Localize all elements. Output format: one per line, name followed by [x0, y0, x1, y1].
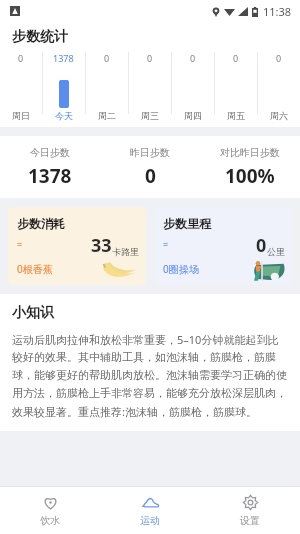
staticText: 0	[18, 52, 24, 64]
staticText: 1378	[53, 52, 74, 64]
staticText: 0	[147, 52, 153, 64]
button[interactable]: 运动	[100, 487, 200, 534]
staticText: 0	[145, 163, 156, 189]
button[interactable]: 设置	[200, 487, 300, 534]
other: 运动	[142, 494, 159, 511]
staticText: 公里	[267, 246, 285, 257]
staticText: =	[163, 238, 169, 250]
staticText: 运动	[140, 514, 160, 527]
staticText: 今天	[55, 110, 73, 121]
staticText: 周二	[98, 110, 116, 121]
staticText: =	[17, 238, 23, 250]
staticText: 33	[91, 233, 112, 258]
staticText: 0	[256, 233, 267, 258]
staticText: 小知识	[12, 304, 54, 322]
staticText: 步数消耗	[17, 216, 65, 231]
staticText: 100%	[225, 163, 275, 189]
staticText: 运动后肌肉拉伸和放松非常重要，5–10分钟就能起到比较好的效果。其中辅助工具，如…	[12, 332, 288, 419]
staticText: 饮水	[40, 514, 60, 527]
staticText: 卡路里	[112, 246, 139, 257]
staticText: 今日步数	[30, 146, 70, 159]
staticText: 周四	[184, 110, 202, 121]
staticText: 0根香蕉	[17, 262, 53, 276]
staticText: 周五	[227, 110, 245, 121]
staticText: 对比昨日步数	[220, 146, 280, 159]
button[interactable]: 昨日步数	[100, 136, 200, 198]
button[interactable]: 步数消耗	[8, 207, 146, 285]
button[interactable]: 饮水	[0, 487, 100, 534]
staticText: 0圈操场	[163, 262, 199, 276]
staticText: 周六	[270, 110, 288, 121]
staticText: 昨日步数	[130, 146, 170, 159]
other: 饮水	[42, 494, 59, 511]
button[interactable]: 步数里程	[154, 207, 292, 285]
staticText: 周三	[141, 110, 159, 121]
button[interactable]: 对比昨日步数	[200, 136, 300, 198]
staticText: 0	[276, 52, 282, 64]
staticText: 步数统计	[12, 28, 68, 46]
staticText: 0	[104, 52, 110, 64]
staticText: 1378	[28, 163, 72, 189]
button[interactable]: 今日步数	[0, 136, 100, 198]
staticText: 步数里程	[163, 216, 211, 231]
other: 设置	[242, 494, 259, 511]
staticText: 11:38	[263, 4, 292, 19]
staticText: 周日	[12, 110, 30, 121]
staticText: 0	[233, 52, 239, 64]
staticText: 0	[190, 52, 196, 64]
staticText: 设置	[240, 514, 260, 527]
